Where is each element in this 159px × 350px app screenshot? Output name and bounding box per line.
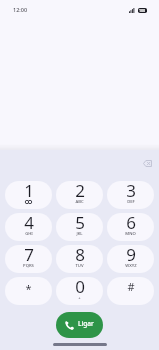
staticText: WXYZ	[125, 263, 137, 269]
staticText: DEF	[127, 199, 135, 205]
staticText: MNO	[125, 231, 136, 237]
staticText: 1	[24, 181, 34, 202]
staticText: #	[127, 279, 135, 294]
button[interactable]: 5	[56, 213, 103, 241]
staticText: 6	[126, 213, 136, 234]
staticText: ABC	[75, 199, 84, 205]
button[interactable]: Ligar	[56, 312, 103, 338]
button[interactable]: 0	[56, 277, 103, 305]
button[interactable]: #	[107, 277, 154, 305]
staticText: +	[78, 295, 81, 301]
staticText: 2	[75, 181, 85, 202]
staticText: TUV	[75, 263, 84, 269]
button[interactable]: Backspace	[138, 154, 156, 172]
button[interactable]: 8	[56, 245, 103, 273]
staticText: *	[25, 281, 32, 296]
staticText: 7	[24, 245, 34, 266]
button[interactable]: 1	[5, 181, 52, 209]
staticText: 0	[75, 277, 85, 298]
button[interactable]: 7	[5, 245, 52, 273]
staticText: PQRS	[23, 263, 34, 269]
staticText: 3	[126, 181, 136, 202]
button[interactable]: *	[5, 277, 52, 305]
staticText: 4	[24, 213, 34, 234]
staticText: Ligar	[78, 319, 94, 328]
button[interactable]: 6	[107, 213, 154, 241]
staticText: 100	[139, 8, 146, 13]
button[interactable]: 3	[107, 181, 154, 209]
button[interactable]: 9	[107, 245, 154, 273]
button[interactable]: 2	[56, 181, 103, 209]
staticText: 8	[75, 245, 85, 266]
staticText: GHI	[25, 231, 33, 237]
staticText: 9	[126, 245, 136, 266]
staticText: 5	[75, 213, 85, 234]
staticText: JKL	[76, 231, 83, 237]
staticText: 12:00	[13, 6, 28, 13]
button[interactable]: 4	[5, 213, 52, 241]
